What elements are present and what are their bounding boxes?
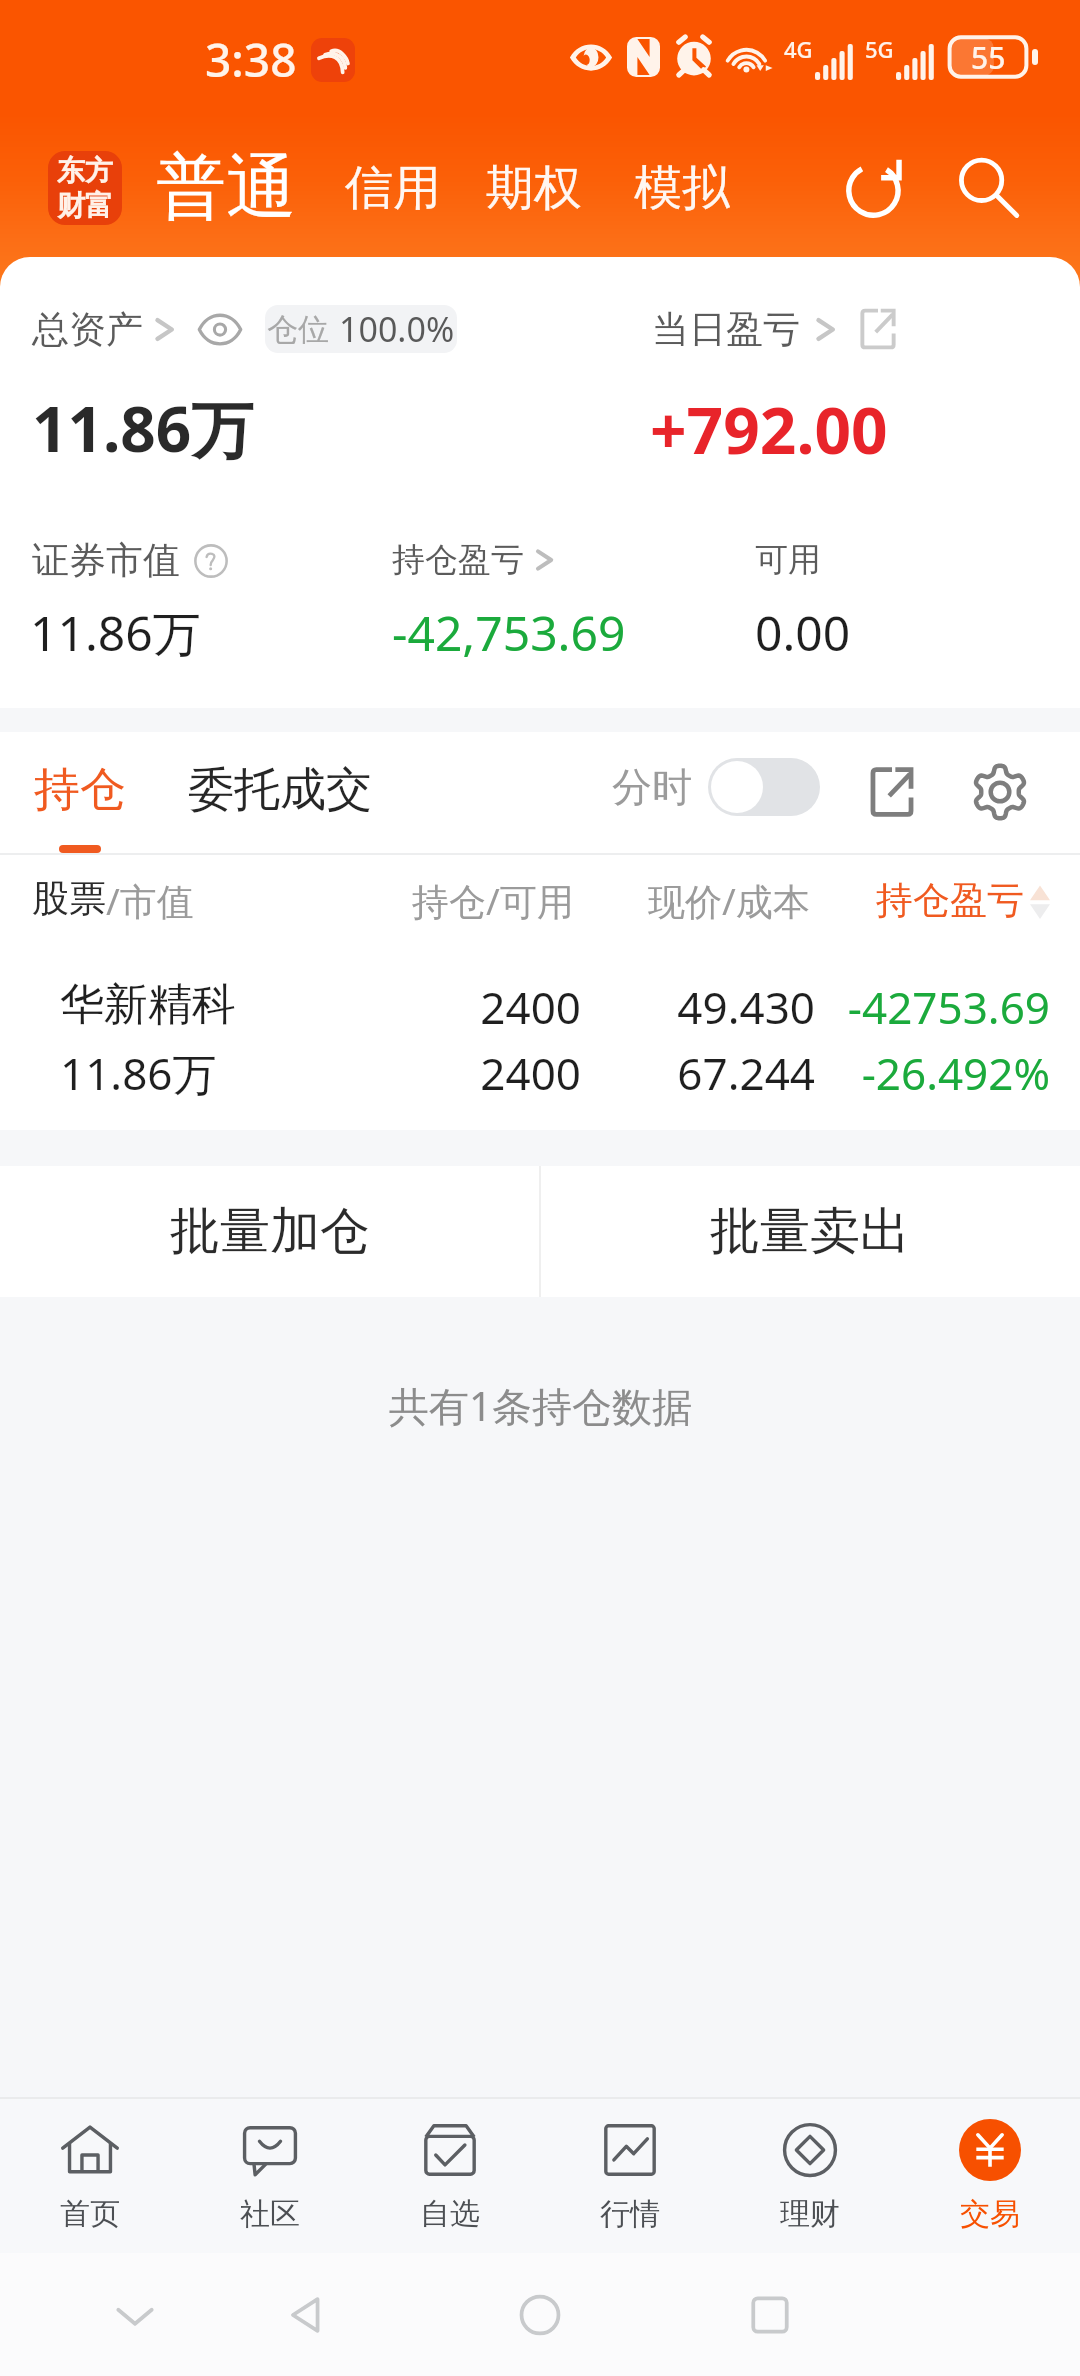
- staticText: 交易: [960, 2195, 1020, 2233]
- staticText: 分时: [612, 762, 692, 812]
- button[interactable]: Settings: [962, 754, 1038, 830]
- staticText: 2400: [0, 1043, 581, 1103]
- button[interactable]: 理财: [720, 2099, 900, 2253]
- button[interactable]: 信用: [345, 158, 441, 218]
- staticText: 总资产: [32, 306, 143, 353]
- button[interactable]: 社区: [180, 2099, 360, 2253]
- staticText: -42753.69: [0, 977, 1050, 1037]
- button[interactable]: 持仓: [24, 761, 136, 853]
- staticText: 4G: [784, 34, 813, 64]
- staticText: 持仓/可用: [412, 875, 574, 926]
- staticText: 行情: [600, 2195, 660, 2233]
- staticText: 11.86万: [32, 386, 254, 462]
- button[interactable]: 分时: [612, 758, 820, 816]
- button[interactable]: 普通: [156, 144, 296, 232]
- staticText: -42,753.69: [392, 600, 626, 664]
- staticText: 持仓: [34, 761, 126, 819]
- staticText: 东方: [57, 153, 113, 188]
- button[interactable]: 华新精科: [0, 950, 1080, 1120]
- staticText: 首页: [60, 2195, 120, 2233]
- button[interactable]: 持仓盈亏: [392, 539, 556, 581]
- button[interactable]: 自选: [360, 2099, 540, 2253]
- staticText: 现价/成本: [648, 875, 810, 926]
- staticText: 批量加仓: [170, 1200, 370, 1263]
- staticText: 当日盈亏: [652, 306, 800, 353]
- staticText: 持仓盈亏: [392, 539, 524, 581]
- staticText: 期权: [486, 158, 582, 218]
- staticText: 证券市值: [32, 537, 180, 584]
- staticText: 100.0%: [339, 306, 455, 352]
- staticText: 股票: [32, 875, 106, 922]
- button[interactable]: Hide amount: [192, 301, 248, 357]
- button[interactable]: Recents: [727, 2272, 813, 2358]
- staticText: 11.86万: [30, 600, 201, 664]
- staticText: 可用: [755, 539, 821, 581]
- staticText: 0.00: [755, 600, 851, 664]
- staticText: 财富: [57, 188, 113, 223]
- staticText: 持仓盈亏: [876, 877, 1024, 924]
- staticText: 55: [971, 37, 1006, 78]
- button[interactable]: 仓位: [265, 305, 457, 353]
- button[interactable]: 交易: [900, 2099, 1080, 2253]
- button[interactable]: 首页: [0, 2099, 180, 2253]
- staticText: 华新精科: [60, 977, 236, 1032]
- button[interactable]: 持仓盈亏: [876, 877, 1024, 924]
- staticText: 普通: [156, 144, 296, 232]
- button[interactable]: 总资产: [32, 306, 177, 353]
- button[interactable]: Home: [497, 2272, 583, 2358]
- button[interactable]: Refresh: [828, 140, 924, 236]
- staticText: 委托成交: [188, 761, 372, 819]
- staticText: 共有1条持仓数据: [389, 1378, 692, 1433]
- staticText: 模拟: [634, 158, 730, 218]
- button[interactable]: 委托成交: [180, 753, 380, 827]
- staticText: 5G: [865, 34, 894, 64]
- staticText: 67.244: [0, 1043, 815, 1103]
- button[interactable]: 批量加仓: [0, 1166, 540, 1297]
- staticText: 2400: [0, 977, 581, 1037]
- button[interactable]: 当日盈亏: [652, 306, 838, 353]
- staticText: 批量卖出: [710, 1200, 910, 1263]
- staticText: 11.86万: [60, 1043, 217, 1103]
- button[interactable]: Open detail: [850, 301, 906, 357]
- staticText: 理财: [780, 2195, 840, 2233]
- staticText: 仓位: [267, 310, 329, 349]
- button[interactable]: Search: [940, 140, 1036, 236]
- button[interactable]: Hide: [92, 2272, 178, 2358]
- staticText: /市值: [106, 875, 194, 926]
- button[interactable]: 模拟: [634, 158, 730, 218]
- button[interactable]: Back: [264, 2272, 350, 2358]
- button[interactable]: 东方财富: [48, 151, 122, 225]
- staticText: 49.430: [0, 977, 815, 1037]
- staticText: 社区: [240, 2195, 300, 2233]
- staticText: 自选: [420, 2195, 480, 2233]
- staticText: +792.00: [650, 386, 888, 462]
- staticText: -26.492%: [0, 1043, 1050, 1103]
- button[interactable]: 期权: [486, 158, 582, 218]
- button[interactable]: Share: [854, 754, 930, 830]
- staticText: 信用: [345, 158, 441, 218]
- staticText: 3:38: [205, 28, 297, 91]
- button[interactable]: 行情: [540, 2099, 720, 2253]
- button[interactable]: 批量卖出: [540, 1166, 1080, 1297]
